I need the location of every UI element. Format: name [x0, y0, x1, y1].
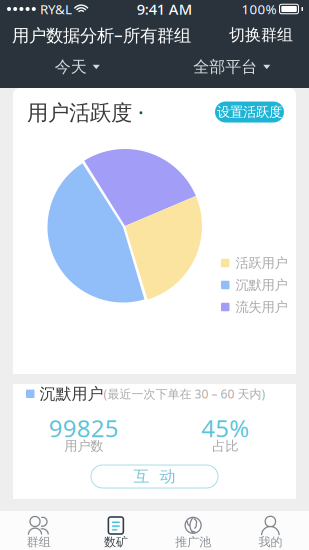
button[interactable]: 设置活跃度: [215, 101, 284, 122]
staticText: 数矿: [104, 535, 128, 549]
staticText: 活跃用户: [235, 255, 287, 271]
staticText: 我的: [258, 535, 282, 549]
staticText: 9:41 AM: [137, 0, 192, 19]
staticText: 用户数据分析–所有群组: [12, 23, 191, 46]
staticText: 推广池: [175, 535, 211, 549]
button[interactable]: 切换群组: [225, 19, 297, 51]
staticText: 99825: [49, 412, 119, 444]
button[interactable]: 全部平台: [154, 52, 309, 82]
button[interactable]: 群组: [0, 510, 77, 550]
staticText: 设置活跃度: [217, 104, 282, 120]
button[interactable]: 推广池: [154, 510, 232, 550]
staticText: 用户活跃度 ·: [27, 98, 144, 126]
button[interactable]: 互 动: [91, 465, 218, 488]
staticText: 沉默用户: [235, 277, 287, 293]
button[interactable]: 我的: [232, 510, 309, 550]
staticText: 切换群组: [229, 25, 293, 45]
staticText: 占比: [212, 438, 238, 454]
button[interactable]: 今天: [0, 52, 154, 82]
staticText: 45%: [201, 412, 249, 444]
staticText: 互 动: [133, 467, 175, 486]
staticText: 群组: [27, 535, 51, 549]
button[interactable]: 数矿: [77, 510, 154, 550]
staticText: RY&L: [40, 0, 72, 18]
staticText: 今天: [55, 57, 87, 77]
staticText: 全部平台: [193, 57, 257, 77]
staticText: (最近一次下单在 30 – 60 天内): [103, 386, 265, 402]
staticText: 沉默用户: [39, 384, 103, 404]
staticText: 用户数: [64, 438, 103, 454]
staticText: 100%: [241, 0, 276, 18]
staticText: 流失用户: [235, 299, 287, 315]
